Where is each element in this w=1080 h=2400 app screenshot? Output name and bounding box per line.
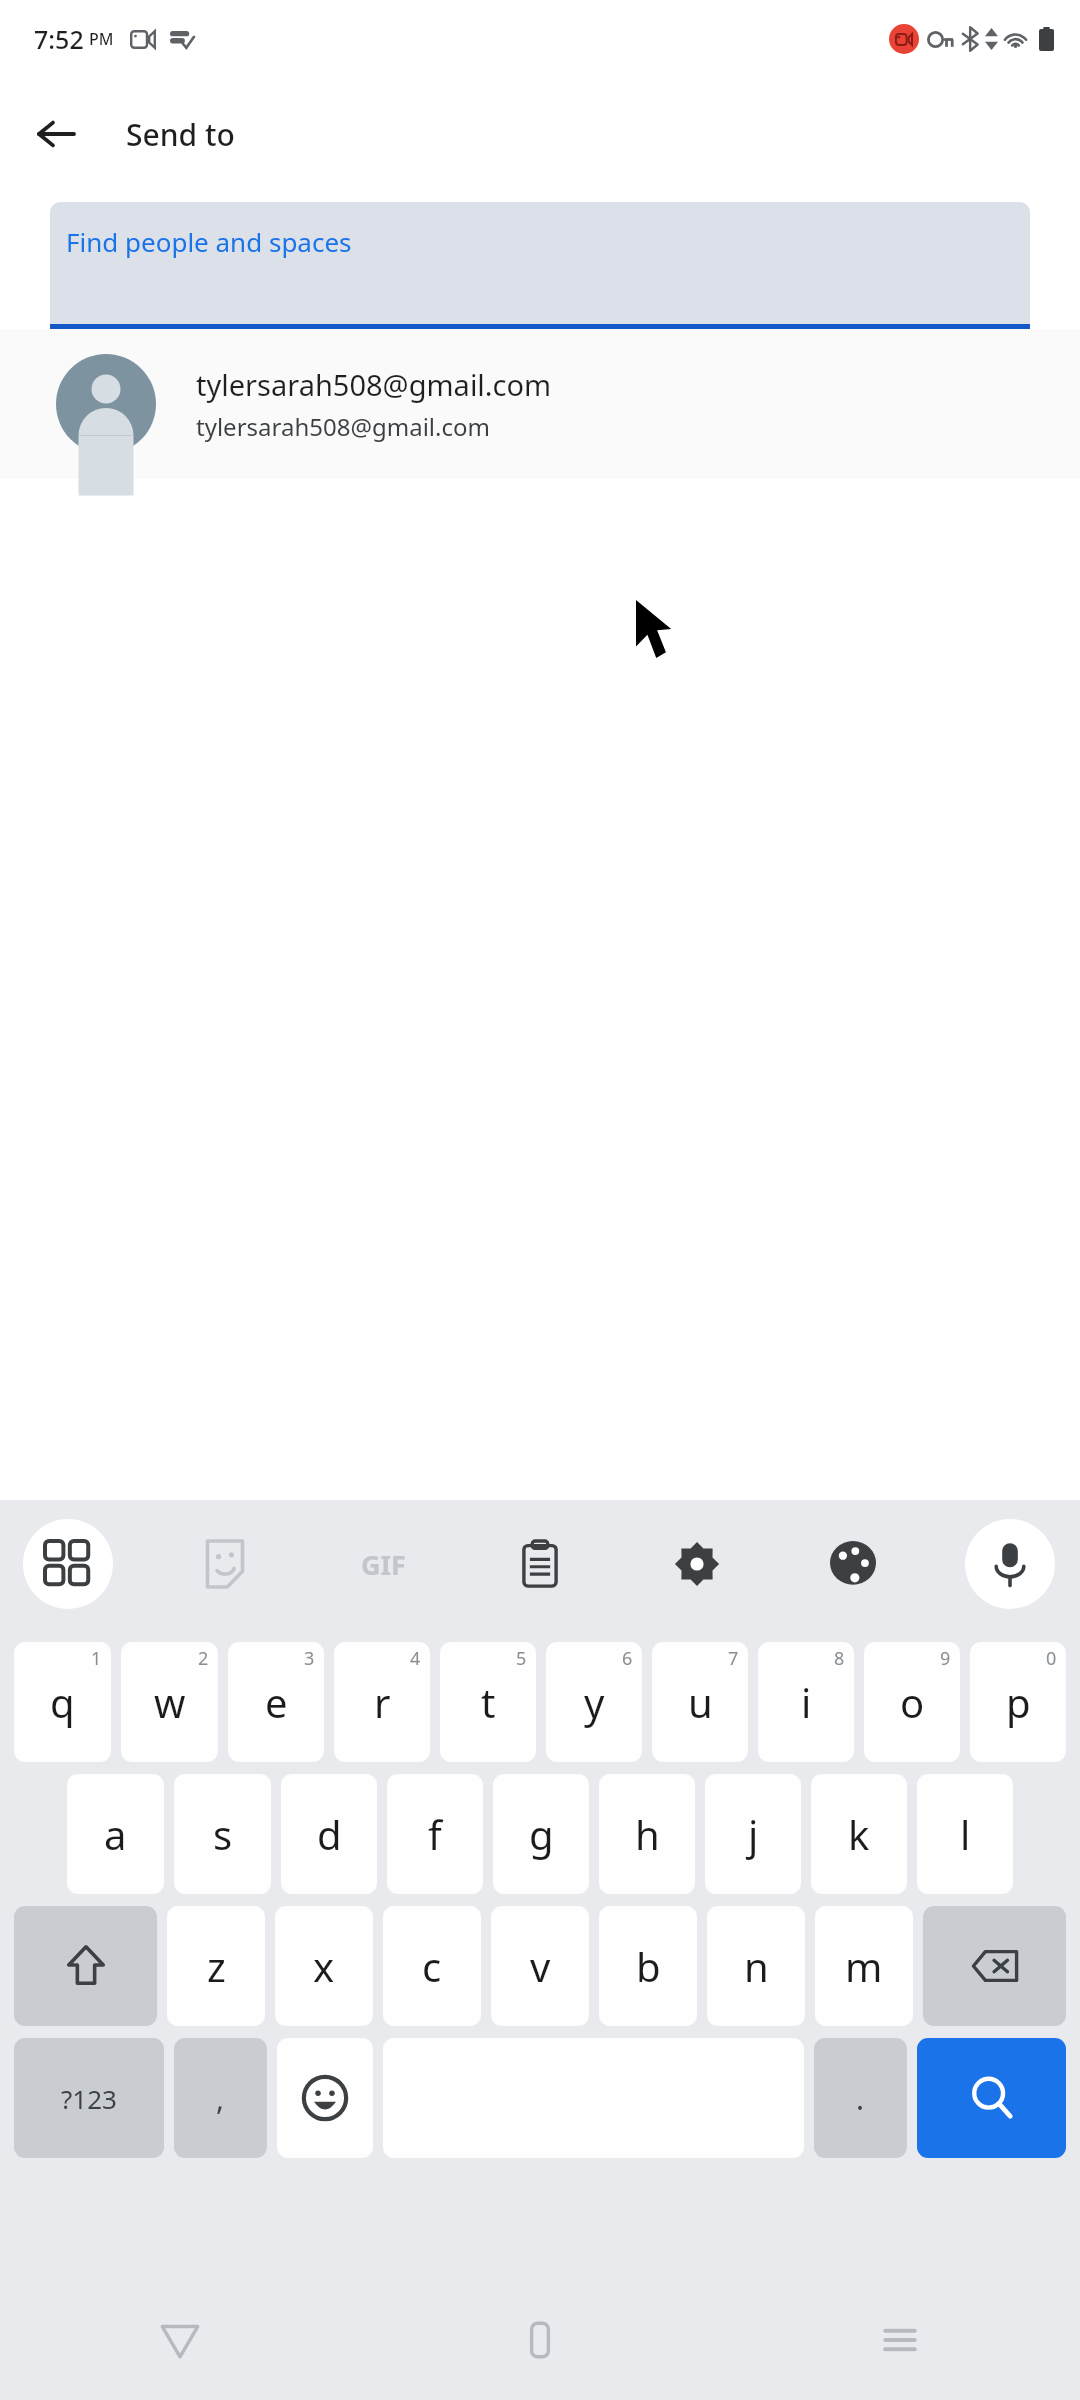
button[interactable]: k bbox=[811, 1774, 907, 1894]
button[interactable]: Shift bbox=[14, 1906, 157, 2026]
button[interactable]: y bbox=[546, 1642, 642, 1762]
staticText: 0 bbox=[1046, 1646, 1057, 1671]
staticText: g bbox=[529, 1807, 554, 1861]
button[interactable]: e bbox=[228, 1642, 324, 1762]
button[interactable]: v bbox=[491, 1906, 589, 2026]
staticText: m bbox=[845, 1939, 883, 1993]
staticText: n bbox=[744, 1939, 769, 1993]
staticText: tylersarah508@gmail.com bbox=[196, 410, 490, 443]
button[interactable]: b bbox=[599, 1906, 697, 2026]
button[interactable]: Emoji bbox=[277, 2038, 373, 2158]
button[interactable]: d bbox=[281, 1774, 377, 1894]
button[interactable]: , bbox=[174, 2038, 267, 2158]
staticText: y bbox=[584, 1675, 605, 1729]
button[interactable]: Search bbox=[917, 2038, 1066, 2158]
staticText: b bbox=[636, 1939, 661, 1993]
staticText: ?123 bbox=[61, 2081, 117, 2116]
button[interactable]: Theme bbox=[808, 1519, 898, 1609]
button[interactable]: z bbox=[167, 1906, 265, 2026]
button[interactable]: n bbox=[707, 1906, 805, 2026]
staticText: k bbox=[848, 1807, 870, 1861]
staticText: u bbox=[688, 1675, 713, 1729]
staticText: h bbox=[635, 1807, 660, 1861]
button[interactable]: f bbox=[387, 1774, 483, 1894]
staticText: 9 bbox=[940, 1646, 951, 1671]
staticText: 8 bbox=[834, 1646, 845, 1671]
staticText: z bbox=[207, 1939, 226, 1993]
staticText: GIF bbox=[361, 1546, 406, 1583]
button[interactable]: l bbox=[917, 1774, 1013, 1894]
staticText: f bbox=[428, 1807, 442, 1861]
button[interactable]: Back bbox=[0, 2280, 360, 2400]
button[interactable]: x bbox=[275, 1906, 373, 2026]
button[interactable]: p bbox=[970, 1642, 1066, 1762]
button[interactable]: a bbox=[67, 1774, 164, 1894]
staticText: o bbox=[900, 1675, 925, 1729]
staticText: 5 bbox=[516, 1646, 527, 1671]
staticText: 7:52 bbox=[34, 22, 84, 56]
staticText: i bbox=[801, 1675, 812, 1729]
staticText: w bbox=[154, 1675, 186, 1729]
button[interactable]: q bbox=[14, 1642, 111, 1762]
button[interactable]: GIF bbox=[338, 1519, 428, 1609]
staticText: e bbox=[265, 1675, 288, 1729]
button[interactable]: j bbox=[705, 1774, 801, 1894]
staticText: d bbox=[317, 1807, 342, 1861]
staticText: r bbox=[374, 1675, 391, 1729]
staticText: j bbox=[748, 1807, 759, 1861]
staticText: PM bbox=[89, 28, 114, 50]
button[interactable]: o bbox=[864, 1642, 960, 1762]
button[interactable]: Back bbox=[20, 98, 92, 170]
staticText: 4 bbox=[410, 1646, 421, 1671]
staticText: . bbox=[856, 2078, 865, 2119]
button[interactable]: w bbox=[121, 1642, 218, 1762]
button[interactable]: . bbox=[814, 2038, 907, 2158]
button[interactable]: g bbox=[493, 1774, 589, 1894]
staticText: x bbox=[313, 1939, 335, 1993]
button[interactable]: r bbox=[334, 1642, 430, 1762]
button[interactable]: Voice input bbox=[965, 1519, 1055, 1609]
staticText: p bbox=[1006, 1675, 1031, 1729]
staticText: 1 bbox=[91, 1646, 102, 1671]
button[interactable]: Home bbox=[360, 2280, 720, 2400]
button[interactable]: s bbox=[174, 1774, 271, 1894]
button[interactable]: Clipboard bbox=[495, 1519, 585, 1609]
button[interactable]: Recents bbox=[720, 2280, 1080, 2400]
staticText: 6 bbox=[622, 1646, 633, 1671]
staticText: l bbox=[960, 1807, 971, 1861]
button[interactable]: c bbox=[383, 1906, 481, 2026]
button[interactable]: Stickers bbox=[180, 1519, 270, 1609]
staticText: Find people and spaces bbox=[66, 224, 352, 259]
button[interactable]: m bbox=[815, 1906, 913, 2026]
staticText: , bbox=[216, 2078, 225, 2119]
button[interactable]: ?123 bbox=[14, 2038, 164, 2158]
staticText: t bbox=[481, 1675, 496, 1729]
staticText: v bbox=[530, 1939, 551, 1993]
button[interactable]: Find people and spaces bbox=[50, 202, 1030, 324]
button[interactable]: h bbox=[599, 1774, 695, 1894]
staticText: tylersarah508@gmail.com bbox=[196, 365, 552, 404]
staticText: 7 bbox=[728, 1646, 739, 1671]
button[interactable]: tylersarah508@gmail.com bbox=[0, 329, 1080, 479]
staticText: Send to bbox=[126, 114, 235, 155]
staticText: c bbox=[422, 1939, 442, 1993]
button[interactable]: Settings bbox=[652, 1519, 742, 1609]
button[interactable]: u bbox=[652, 1642, 748, 1762]
staticText: q bbox=[50, 1675, 75, 1729]
button[interactable]: Apps bbox=[23, 1519, 113, 1609]
button[interactable]: i bbox=[758, 1642, 854, 1762]
staticText: a bbox=[104, 1807, 127, 1861]
staticText: 3 bbox=[304, 1646, 315, 1671]
staticText: 2 bbox=[198, 1646, 209, 1671]
staticText: s bbox=[213, 1807, 233, 1861]
button[interactable]: Backspace bbox=[923, 1906, 1066, 2026]
button[interactable]: t bbox=[440, 1642, 536, 1762]
